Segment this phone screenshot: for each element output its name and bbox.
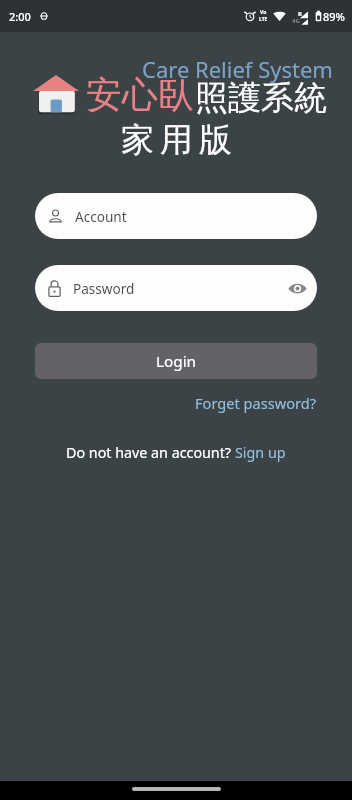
staticText: 安心臥 <box>86 72 194 117</box>
staticText: 家用版 <box>118 119 235 161</box>
staticText: Sign up <box>235 443 286 462</box>
staticText: LTE <box>259 16 268 23</box>
button[interactable]: Show password <box>282 271 312 305</box>
staticText: 2:00 <box>9 9 31 24</box>
button[interactable]: Account <box>35 193 317 239</box>
button[interactable]: Forget password? <box>195 393 317 413</box>
button[interactable]: Password <box>35 265 317 311</box>
staticText: 4G <box>292 17 300 25</box>
staticText: 照護系統 <box>195 77 327 119</box>
staticText: Do not have an account? <box>66 443 235 462</box>
staticText: R <box>298 10 302 18</box>
staticText: 89% <box>323 9 345 24</box>
staticText: Forget password? <box>195 393 317 413</box>
staticText: Vo <box>260 9 267 16</box>
staticText: Account <box>75 207 127 226</box>
staticText: Password <box>73 279 135 298</box>
button[interactable]: Sign up <box>235 443 286 462</box>
button[interactable]: Login <box>35 343 317 379</box>
staticText: Login <box>156 351 197 372</box>
staticText: Care Relief System <box>142 54 333 84</box>
